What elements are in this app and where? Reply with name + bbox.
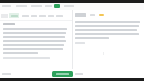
button[interactable]: Menu item: [16, 3, 27, 8]
button[interactable]: Menu item: [45, 3, 52, 8]
button[interactable]: Tab: [48, 14, 54, 18]
button[interactable]: [52, 71, 73, 77]
button[interactable]: Rating: [99, 14, 104, 16]
button[interactable]: Tab: [56, 14, 63, 18]
button[interactable]: Menu item: [31, 3, 42, 8]
button[interactable]: Menu item: [64, 3, 74, 8]
button[interactable]: Menu item: [2, 3, 11, 8]
button[interactable]: Tab: [22, 14, 29, 18]
button[interactable]: Active tab: [54, 4, 60, 8]
button[interactable]: Tab: [31, 14, 37, 18]
button[interactable]: Tab: [39, 14, 46, 18]
button[interactable]: Tab 2: [9, 13, 19, 18]
